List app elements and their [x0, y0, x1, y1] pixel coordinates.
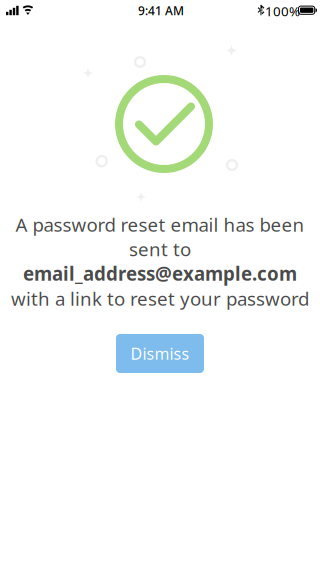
staticText: 9:41 AM [138, 2, 184, 18]
staticText: with a link to reset your password [11, 286, 309, 311]
staticText: sent to [129, 237, 191, 261]
staticText: A password reset email has been [15, 212, 304, 237]
staticText: email_address@example.com [23, 261, 297, 286]
staticText: Dismiss [130, 343, 189, 364]
button[interactable]: Dismiss [116, 334, 204, 373]
staticText: 100% [265, 2, 300, 20]
